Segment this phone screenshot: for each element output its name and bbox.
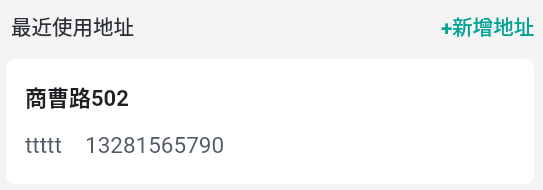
staticText: ttttt xyxy=(25,132,62,158)
staticText: 最近使用地址 xyxy=(11,11,134,41)
staticText: 商曹路502 xyxy=(25,80,129,112)
staticText: 13281565790 xyxy=(85,132,225,158)
staticText: +新增地址 xyxy=(441,11,535,41)
button[interactable]: 商曹路502 xyxy=(6,59,534,184)
button[interactable]: +新增地址 xyxy=(429,1,543,51)
